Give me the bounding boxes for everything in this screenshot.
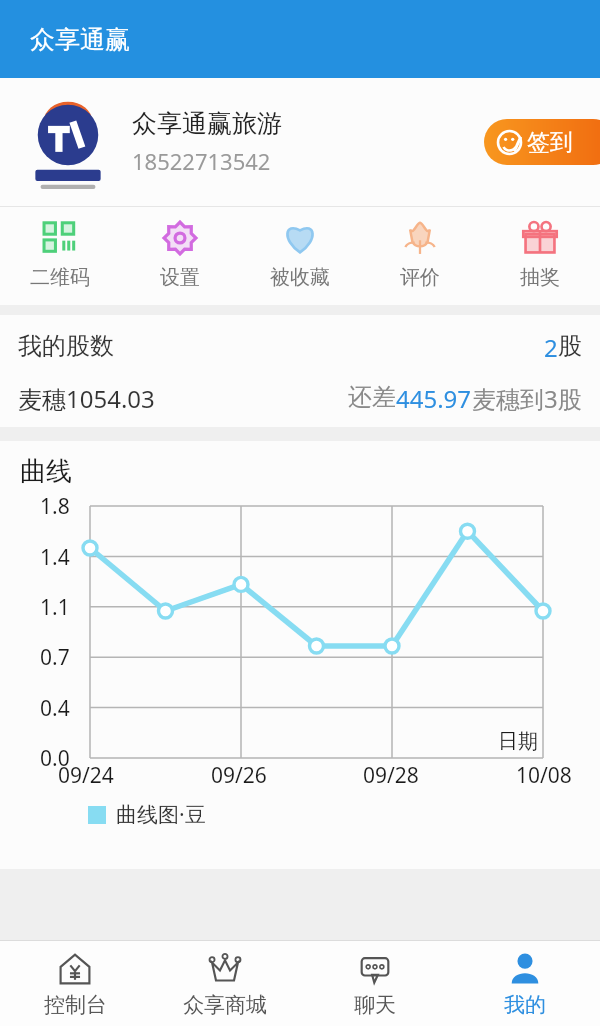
button[interactable]: Sign in: [484, 119, 600, 165]
staticText: 设置: [160, 265, 200, 290]
button[interactable]: 抽奖: [480, 207, 600, 305]
button[interactable]: 众享商城: [150, 941, 300, 1026]
button[interactable]: 二维码: [0, 207, 120, 305]
button[interactable]: 我的: [450, 941, 600, 1026]
staticText: 0.0: [40, 744, 70, 773]
staticText: 0.7: [40, 643, 70, 672]
staticText: 445.97: [396, 382, 472, 415]
staticText: 众享通赢旅游: [132, 108, 282, 139]
staticText: 评价: [400, 265, 440, 290]
staticText: 众享通赢: [30, 24, 130, 55]
staticText: 被收藏: [270, 265, 330, 290]
staticText: 0.4: [40, 694, 70, 723]
other: Sign in: [496, 129, 523, 156]
button[interactable]: 控制台: [0, 941, 150, 1026]
staticText: 还差: [348, 382, 396, 412]
staticText: 10/08: [516, 761, 572, 790]
staticText: 1.1: [40, 593, 70, 622]
staticText: 我的股数: [18, 331, 114, 361]
staticText: 09/28: [363, 761, 419, 790]
staticText: 日期: [498, 729, 538, 754]
staticText: 09/26: [211, 761, 267, 790]
staticText: 抽奖: [520, 265, 560, 290]
staticText: 18522713542: [132, 146, 271, 176]
staticText: 麦穗到3股: [472, 382, 582, 415]
staticText: 股: [558, 331, 582, 361]
staticText: 我的: [504, 992, 546, 1018]
staticText: 曲线: [20, 455, 72, 488]
button[interactable]: 聊天: [300, 941, 450, 1026]
staticText: 2: [544, 331, 558, 364]
staticText: 签到: [527, 128, 573, 157]
button[interactable]: 设置: [120, 207, 240, 305]
button[interactable]: 被收藏: [240, 207, 360, 305]
staticText: 1.8: [40, 492, 70, 521]
staticText: 控制台: [44, 992, 107, 1018]
staticText: 众享商城: [183, 992, 267, 1018]
staticText: 09/24: [58, 761, 114, 790]
button[interactable]: 评价: [360, 207, 480, 305]
staticText: 1.4: [40, 543, 70, 572]
staticText: 聊天: [354, 992, 396, 1018]
staticText: 二维码: [30, 265, 90, 290]
staticText: 麦穗1054.03: [18, 382, 155, 415]
staticText: 曲线图·豆: [116, 800, 206, 829]
